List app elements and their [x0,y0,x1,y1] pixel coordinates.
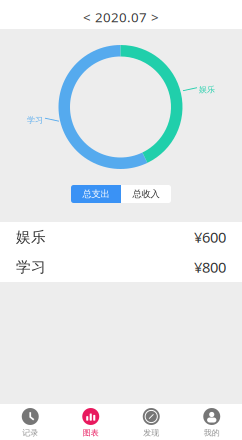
staticText: 总收入 [132,188,159,200]
staticText: 总支出 [82,188,109,200]
button[interactable]: 总支出 [71,185,121,203]
button[interactable]: 学习 [0,252,242,282]
staticText: 我的 [204,428,220,438]
staticText: ¥600 [194,227,226,247]
staticText: 图表 [83,428,99,438]
staticText: 娱乐 [199,85,215,94]
button[interactable]: 总收入 [121,185,171,203]
staticText: ¥800 [194,257,226,277]
button[interactable]: 我的 [181,404,242,440]
button[interactable]: 记录 [0,404,60,440]
staticText: 学习 [27,115,43,125]
button[interactable]: Previous month [79,8,95,26]
staticText: 学习 [16,258,46,276]
staticText: 记录 [22,428,38,438]
staticText: > [151,8,159,26]
staticText: 2020.07 [95,8,147,26]
button[interactable]: Next month [147,8,163,26]
button[interactable]: 娱乐 [0,222,242,252]
button[interactable]: 图表 [60,404,121,440]
staticText: < [83,8,91,26]
staticText: 娱乐 [16,228,46,246]
button[interactable]: 发现 [121,404,181,440]
staticText: 发现 [143,428,159,438]
